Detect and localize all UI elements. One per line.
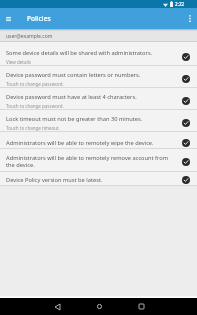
- staticText: Lock timeout must not be greater than 30…: [6, 115, 143, 123]
- button[interactable]: [0, 8, 16, 29]
- staticText: 2:22: [175, 1, 185, 7]
- staticText: Touch to change password.: [6, 81, 64, 87]
- staticText: Some device details will be shared with …: [6, 49, 153, 57]
- button[interactable]: Administrators will be able to remotely …: [0, 132, 197, 149]
- button[interactable]: [42, 298, 72, 315]
- button[interactable]: [183, 8, 197, 29]
- button[interactable]: [126, 298, 156, 315]
- staticText: Policies: [27, 14, 51, 23]
- button[interactable]: Some device details will be shared with …: [0, 42, 197, 66]
- staticText: Touch to change timeout.: [6, 125, 60, 131]
- button[interactable]: Lock timeout must not be greater than 30…: [0, 110, 197, 132]
- staticText: Touch to change password.: [6, 103, 64, 109]
- button[interactable]: Device Policy version must be latest.: [0, 172, 197, 186]
- staticText: View details: [6, 59, 31, 65]
- staticText: Device password must contain letters or …: [6, 71, 141, 79]
- button[interactable]: [84, 298, 114, 315]
- staticText: user@example.com: [6, 33, 53, 40]
- button[interactable]: Administrators will be able to remotely …: [0, 149, 197, 172]
- button[interactable]: Device password must contain letters or …: [0, 66, 197, 88]
- staticText: Device password must have at least 4 cha…: [6, 93, 137, 101]
- button[interactable]: Device password must have at least 4 cha…: [0, 88, 197, 110]
- staticText: Device Policy version must be latest.: [6, 176, 103, 184]
- staticText: Administrators will be able to remotely …: [6, 139, 154, 147]
- staticText: Administrators will be able to remotely …: [6, 154, 169, 169]
